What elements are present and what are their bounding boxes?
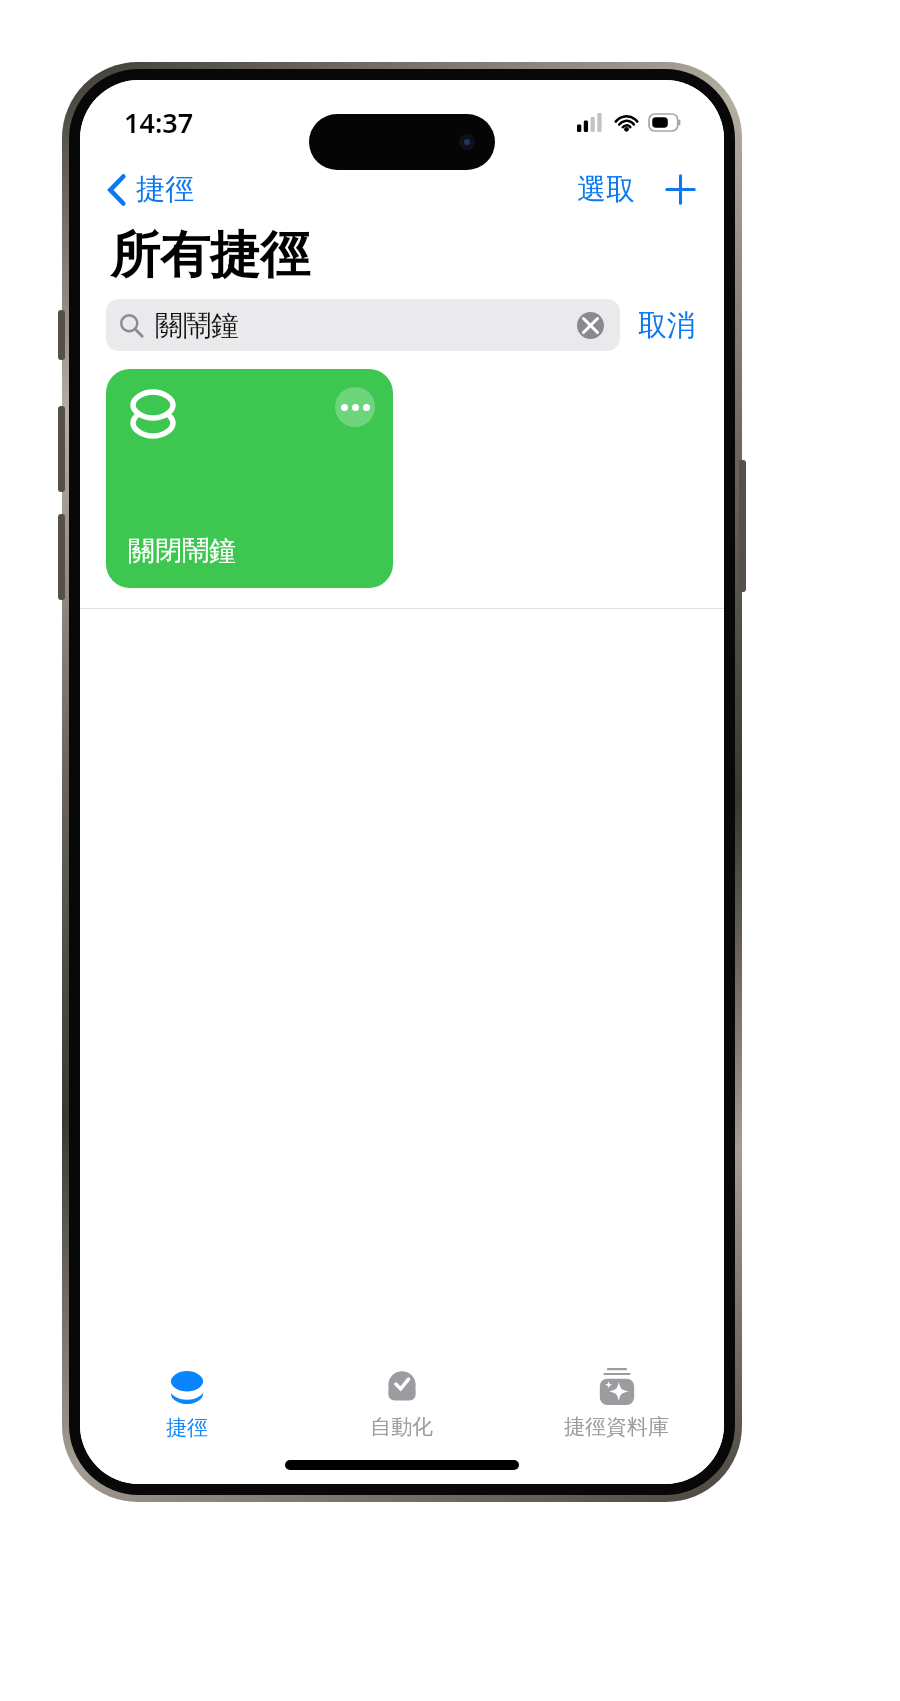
button[interactable]: 取消 bbox=[634, 302, 700, 349]
button[interactable]: 捷徑 bbox=[80, 1352, 294, 1452]
button[interactable]: 捷徑資料庫 bbox=[509, 1352, 724, 1452]
staticText: 關鬧鐘 bbox=[155, 308, 239, 343]
button[interactable]: 更多選項 bbox=[106, 369, 393, 588]
button[interactable]: 清除搜尋 bbox=[573, 308, 607, 342]
button[interactable]: 新增捷徑 bbox=[659, 168, 702, 211]
button[interactable]: 更多選項 bbox=[335, 387, 375, 427]
staticText: 關閉鬧鐘 bbox=[128, 534, 236, 568]
staticText: 所有捷徑 bbox=[110, 224, 310, 287]
staticText: 捷徑 bbox=[166, 1415, 208, 1441]
button[interactable]: 捷徑 bbox=[102, 166, 200, 213]
staticText: 捷徑 bbox=[136, 171, 194, 208]
staticText: 14:37 bbox=[124, 104, 194, 141]
button[interactable]: 選取 bbox=[571, 166, 641, 213]
staticText: 自動化 bbox=[370, 1414, 433, 1440]
staticText: 選取 bbox=[577, 171, 635, 208]
staticText: 取消 bbox=[638, 307, 696, 344]
staticText: 捷徑資料庫 bbox=[564, 1414, 669, 1440]
button[interactable]: 關鬧鐘 bbox=[106, 299, 620, 351]
button[interactable]: 自動化 bbox=[294, 1352, 509, 1452]
